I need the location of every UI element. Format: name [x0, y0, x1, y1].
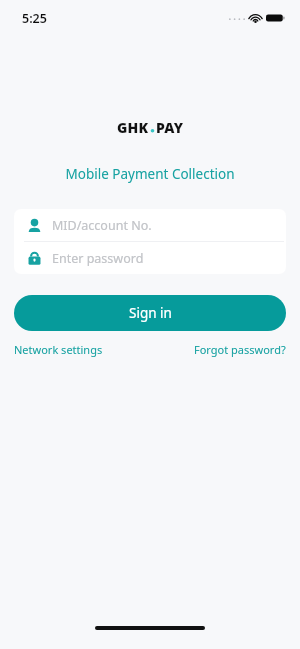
- staticText: Sign in: [129, 304, 172, 322]
- other: Password: [24, 248, 44, 268]
- staticText: 5:25: [22, 10, 47, 27]
- staticText: Forgot password?: [194, 342, 286, 357]
- button[interactable]: Forgot password?: [194, 339, 286, 360]
- staticText: MID/account No.: [52, 217, 152, 234]
- staticText: Enter password: [52, 250, 144, 267]
- staticText: GHK: [117, 118, 149, 137]
- staticText: PAY: [156, 118, 184, 137]
- other: Account: [24, 215, 44, 235]
- staticText: Mobile Payment Collection: [0, 165, 300, 183]
- button[interactable]: Sign in: [14, 295, 286, 331]
- staticText: Network settings: [14, 342, 103, 357]
- button[interactable]: Password: [14, 242, 286, 274]
- button[interactable]: Account: [14, 209, 286, 241]
- button[interactable]: Network settings: [14, 339, 103, 360]
